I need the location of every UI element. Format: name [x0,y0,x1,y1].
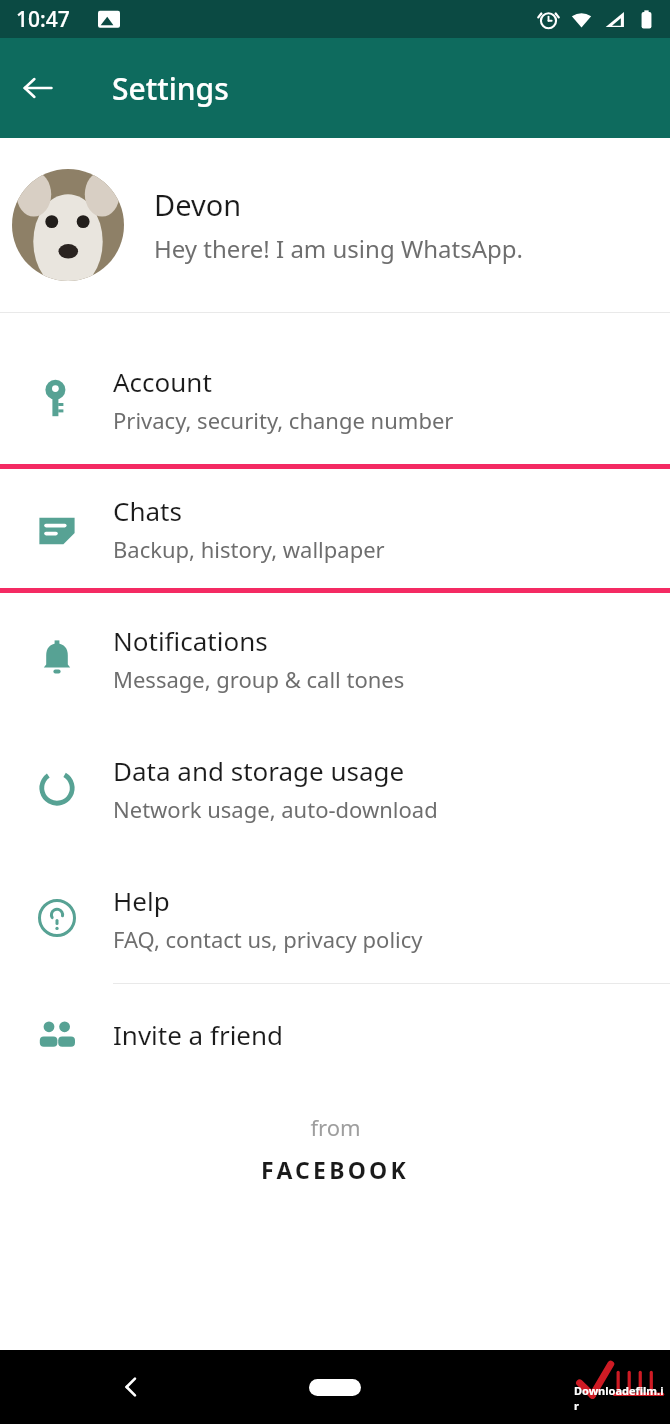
button[interactable]: Notifications [0,593,670,723]
button[interactable]: Data and storage usage [0,723,670,853]
button[interactable]: Help [0,853,670,983]
staticText: Network usage, auto-download [113,794,438,824]
staticText: Backup, history, wallpaper [113,534,385,564]
button[interactable]: Devon [0,138,670,312]
button[interactable]: Invite a friend [0,984,670,1084]
staticText: 10:47 [16,5,70,34]
staticText: Chats [113,493,182,528]
staticText: Account [113,364,212,399]
staticText: Message, group & call tones [113,664,405,694]
staticText: FAQ, contact us, privacy policy [113,924,423,954]
staticText: Downloadefilm.ir [574,1383,666,1413]
staticText: FACEBOOK [261,1154,409,1185]
staticText: Hey there! I am using WhatsApp. [154,232,523,265]
staticText: Notifications [113,623,268,658]
button[interactable]: Chats [0,469,670,588]
staticText: Privacy, security, change number [113,405,454,435]
staticText: Data and storage usage [113,753,405,788]
button[interactable]: Back [108,1364,154,1410]
staticText: Invite a friend [113,1017,284,1052]
staticText: from [310,1112,361,1142]
button[interactable]: Back [10,60,66,116]
staticText: Devon [154,185,242,224]
button[interactable]: Home [309,1379,361,1396]
staticText: Settings [112,68,229,109]
staticText: Help [113,883,170,918]
button[interactable]: Account [0,334,670,464]
